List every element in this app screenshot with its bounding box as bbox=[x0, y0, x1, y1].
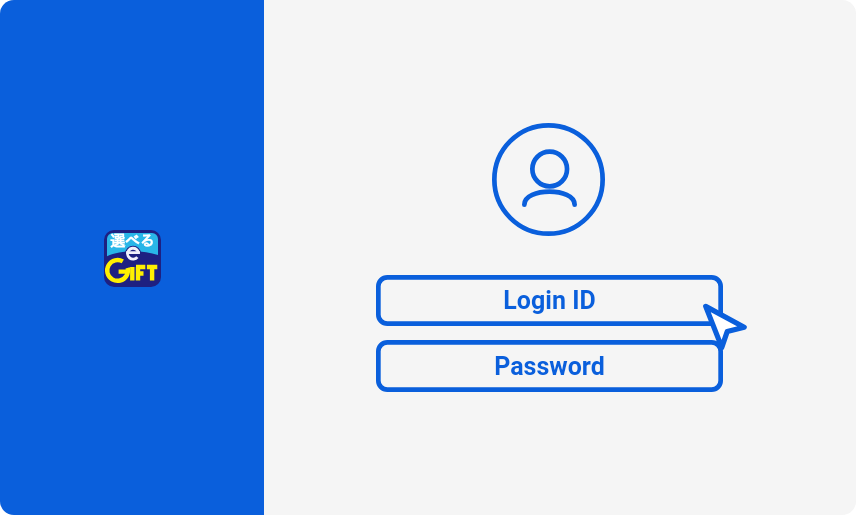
button[interactable]: Login ID bbox=[376, 275, 723, 326]
staticText: Login ID bbox=[503, 286, 596, 315]
button[interactable]: Password bbox=[376, 340, 723, 392]
other: Account avatar bbox=[490, 121, 607, 238]
staticText: 選べる bbox=[110, 233, 155, 248]
staticText: Password bbox=[494, 352, 605, 381]
other: eGIFT logo bbox=[104, 230, 161, 287]
other: Pointer bbox=[698, 299, 754, 355]
